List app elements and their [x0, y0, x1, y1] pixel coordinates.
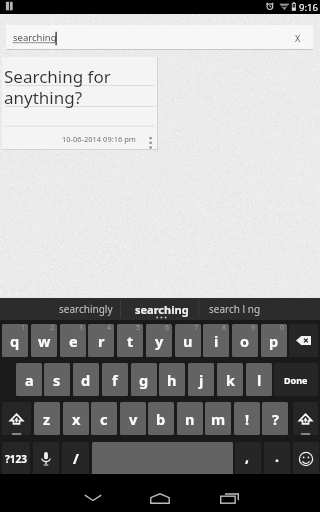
button[interactable]: m [205, 402, 231, 435]
staticText: . [275, 447, 279, 466]
button[interactable]: Shift [293, 402, 318, 435]
button[interactable]: ! [234, 402, 260, 435]
button[interactable]: More options [146, 135, 156, 149]
button[interactable]: v [120, 402, 146, 435]
button[interactable]: r [88, 324, 114, 357]
button[interactable]: ? [262, 402, 288, 435]
staticText: 5 [136, 324, 141, 333]
staticText: v [129, 409, 138, 429]
staticText: o [240, 331, 250, 351]
staticText: b [156, 409, 166, 429]
button[interactable]: u [175, 324, 201, 357]
button[interactable]: w [31, 324, 57, 357]
button[interactable]: g [131, 363, 157, 396]
staticText: Searching for [4, 65, 111, 88]
button[interactable]: i [203, 324, 229, 357]
staticText: h [167, 370, 177, 390]
button[interactable]: , [235, 442, 261, 475]
staticText: searchingly [59, 302, 113, 316]
button[interactable]: / [62, 442, 89, 475]
button[interactable]: searching [121, 298, 199, 320]
button[interactable]: z [34, 402, 60, 435]
button[interactable]: searchingly [0, 298, 121, 320]
button[interactable]: y [146, 324, 172, 357]
button[interactable]: searching [6, 25, 313, 50]
button[interactable]: Done [274, 363, 318, 396]
button[interactable]: c [91, 402, 117, 435]
button[interactable]: b [148, 402, 174, 435]
staticText: 0 [280, 324, 285, 333]
staticText: x [72, 409, 81, 429]
button[interactable]: Recent apps [205, 474, 253, 512]
staticText: anything? [4, 86, 83, 109]
staticText: g [139, 370, 149, 390]
staticText: c [100, 409, 108, 429]
button[interactable]: Space [92, 442, 233, 475]
button[interactable]: Emoji [293, 442, 319, 475]
button[interactable]: n [177, 402, 203, 435]
button[interactable]: l [246, 363, 272, 396]
staticText: f [112, 370, 118, 390]
staticText: 2 [50, 324, 55, 333]
staticText: searching [135, 302, 189, 317]
button[interactable]: Back [69, 474, 117, 512]
button[interactable]: ?123 [2, 442, 30, 475]
staticText: 4 [107, 324, 112, 333]
staticText: ! [245, 409, 250, 429]
staticText: q [10, 331, 20, 351]
staticText: e [69, 331, 78, 351]
staticText: r [98, 331, 105, 351]
staticText: , [245, 447, 249, 466]
button[interactable]: j [188, 363, 214, 396]
button[interactable]: o [232, 324, 258, 357]
staticText: ?123 [5, 452, 27, 466]
staticText: i [214, 331, 219, 351]
staticText: t [127, 331, 134, 351]
button[interactable]: k [217, 363, 243, 396]
staticText: n [185, 409, 195, 429]
staticText: ? [272, 409, 279, 429]
staticText: z [43, 409, 51, 429]
staticText: searching [13, 31, 57, 44]
staticText: j [199, 370, 204, 390]
staticText: 9 [251, 324, 256, 333]
staticText: 1 [21, 324, 26, 333]
staticText: 8 [222, 324, 227, 333]
staticText: X [295, 32, 301, 44]
button[interactable]: search l ng [199, 298, 320, 320]
staticText: d [81, 370, 91, 390]
button[interactable]: Voice input [33, 442, 59, 475]
button[interactable]: Searching for [2, 57, 158, 150]
staticText: 9:16 [299, 1, 318, 14]
button[interactable]: t [117, 324, 143, 357]
button[interactable]: d [73, 363, 99, 396]
button[interactable]: q [2, 324, 28, 357]
staticText: w [38, 331, 51, 351]
staticText: 10-06-2014 09:16 pm [62, 134, 136, 144]
button[interactable]: e [60, 324, 86, 357]
staticText: a [25, 370, 34, 390]
button[interactable]: Shift [2, 402, 31, 435]
staticText: u [183, 331, 193, 351]
button[interactable]: h [159, 363, 185, 396]
button[interactable]: . [264, 442, 290, 475]
staticText: l [257, 370, 262, 390]
staticText: m [211, 409, 226, 429]
staticText: p [269, 331, 279, 351]
button[interactable]: p [261, 324, 287, 357]
staticText: / [73, 449, 79, 468]
button[interactable]: Backspace [289, 324, 318, 357]
staticText: Done [284, 374, 308, 386]
button[interactable]: f [102, 363, 128, 396]
button[interactable]: x [63, 402, 89, 435]
button[interactable]: Clear search [282, 25, 313, 50]
staticText: s [53, 370, 61, 390]
button[interactable]: a [16, 363, 42, 396]
staticText: 6 [165, 324, 170, 333]
staticText: 3 [79, 324, 84, 333]
staticText: k [226, 370, 235, 390]
button[interactable]: s [44, 363, 70, 396]
staticText: search l ng [209, 302, 261, 316]
button[interactable]: Home [136, 474, 184, 512]
staticText: 7 [194, 324, 199, 333]
